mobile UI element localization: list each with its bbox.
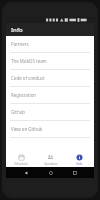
staticText: Info (76, 162, 83, 166)
button[interactable]: The MobOS team (6, 53, 94, 70)
staticText: Github (11, 109, 26, 115)
button[interactable]: Info (65, 152, 94, 167)
button[interactable]: Partners (6, 36, 94, 53)
button[interactable]: Speakers (36, 152, 65, 167)
button[interactable]: Code of conduct (6, 70, 94, 87)
staticText: Info (11, 26, 23, 34)
button[interactable]: Home (46, 168, 55, 177)
button[interactable]: Registration (6, 87, 94, 104)
button[interactable]: View on Github (6, 121, 94, 138)
staticText: Code of conduct (11, 75, 45, 81)
staticText: Speakers (44, 162, 58, 166)
staticText: The MobOS team (11, 58, 47, 64)
staticText: Registration (11, 92, 37, 98)
button[interactable]: Github (6, 104, 94, 121)
staticText: Schedule (14, 162, 28, 166)
button[interactable]: Back (21, 168, 30, 177)
staticText: View on Github (11, 126, 43, 132)
button[interactable]: Recent apps (70, 168, 79, 177)
button[interactable]: Schedule (6, 152, 36, 167)
staticText: Partners (11, 41, 29, 47)
